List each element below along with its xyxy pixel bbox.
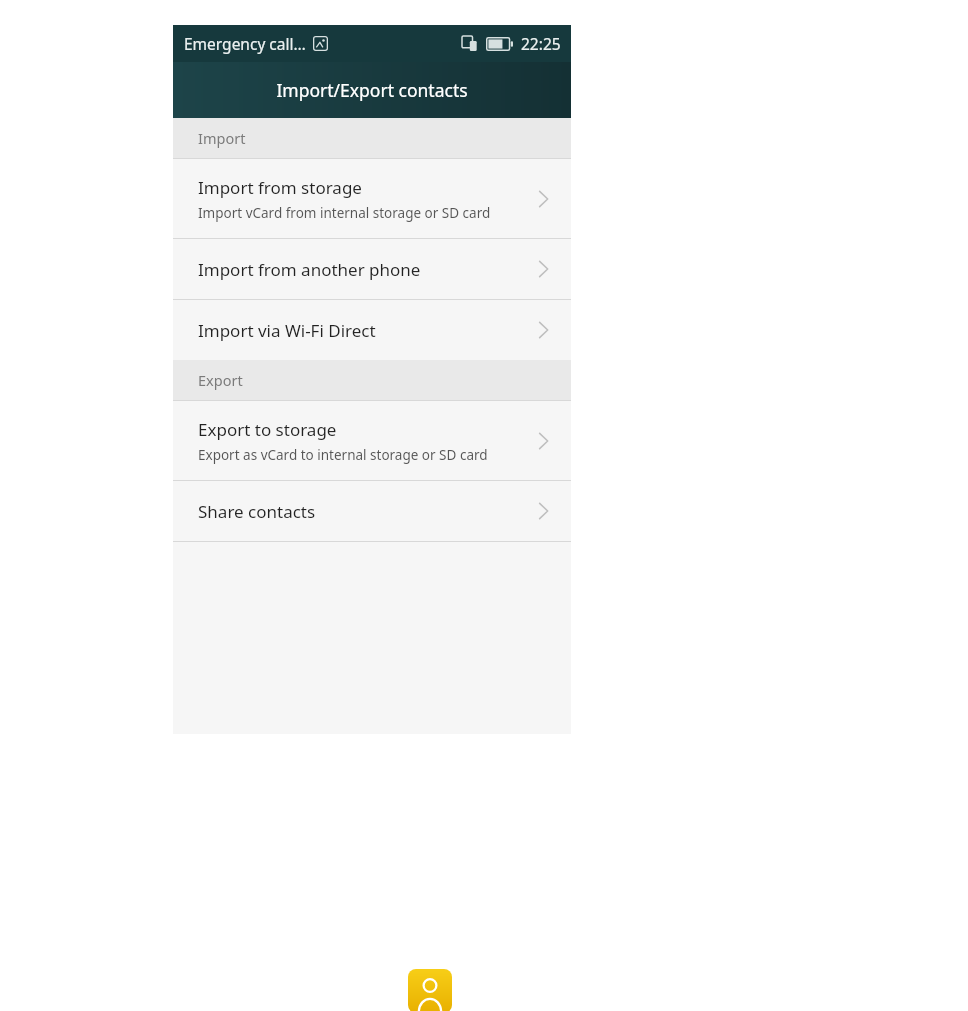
button[interactable]: Contacts — [408, 969, 452, 1011]
staticText: 22:25 — [521, 33, 561, 54]
staticText: Import — [198, 128, 246, 148]
button[interactable]: Import from storage — [173, 159, 571, 238]
staticText: Import from another phone — [198, 258, 421, 281]
staticText: Emergency call… — [184, 33, 306, 54]
staticText: Import/Export contacts — [276, 78, 468, 102]
staticText: Export as vCard to internal storage or S… — [198, 446, 488, 464]
button[interactable]: Import from another phone — [173, 239, 571, 299]
staticText: Export to storage — [198, 418, 337, 441]
button[interactable]: Import via Wi-Fi Direct — [173, 300, 571, 360]
staticText: Import via Wi-Fi Direct — [198, 319, 376, 342]
button[interactable]: Share contacts — [173, 481, 571, 541]
staticText: Import from storage — [198, 176, 362, 199]
staticText: Import vCard from internal storage or SD… — [198, 204, 491, 222]
button[interactable]: Export to storage — [173, 401, 571, 480]
staticText: Export — [198, 370, 243, 390]
staticText: Share contacts — [198, 500, 316, 523]
